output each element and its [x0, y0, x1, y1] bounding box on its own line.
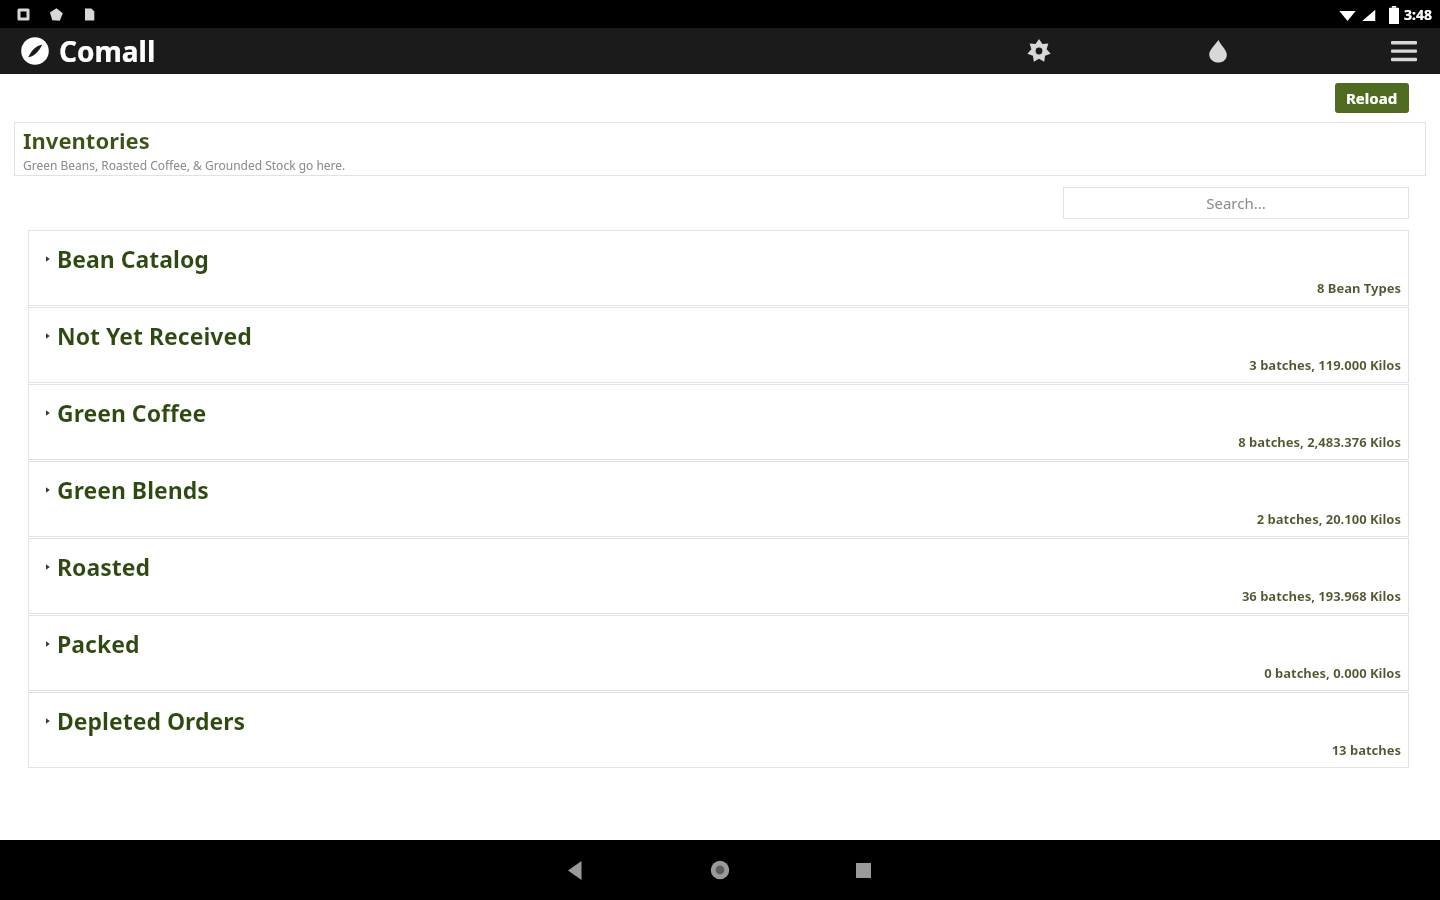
staticText: 2 batches, 20.100 Kilos: [1256, 510, 1401, 528]
staticText: Roasted: [57, 551, 151, 582]
button[interactable]: Depleted Orders: [28, 692, 1409, 768]
button[interactable]: Search...: [1063, 187, 1409, 219]
button[interactable]: Back: [551, 846, 599, 894]
staticText: 36 batches, 193.968 Kilos: [1241, 587, 1401, 605]
button[interactable]: Home: [696, 846, 744, 894]
staticText: 3 batches, 119.000 Kilos: [1249, 356, 1401, 374]
staticText: 13 batches: [1331, 741, 1401, 759]
button[interactable]: Roasting: [1193, 28, 1243, 74]
staticText: Reload: [1346, 88, 1398, 108]
button[interactable]: Recent apps: [839, 846, 887, 894]
staticText: Packed: [57, 628, 140, 659]
button[interactable]: Green Blends: [28, 461, 1409, 537]
staticText: Bean Catalog: [57, 243, 209, 274]
staticText: 3:48: [1404, 5, 1432, 24]
button[interactable]: Settings: [1014, 28, 1064, 74]
staticText: 8 Bean Types: [1316, 279, 1401, 297]
staticText: Green Beans, Roasted Coffee, & Grounded …: [23, 157, 346, 173]
button[interactable]: Comall: [20, 32, 156, 70]
staticText: Green Coffee: [57, 397, 207, 428]
staticText: Depleted Orders: [57, 705, 246, 736]
staticText: Green Blends: [57, 474, 209, 505]
staticText: Comall: [59, 32, 156, 70]
button[interactable]: Menu: [1380, 28, 1428, 74]
staticText: Inventories: [23, 125, 150, 155]
button[interactable]: Green Coffee: [28, 384, 1409, 460]
button[interactable]: Roasted: [28, 538, 1409, 614]
staticText: 8 batches, 2,483.376 Kilos: [1238, 433, 1401, 451]
staticText: 0 batches, 0.000 Kilos: [1264, 664, 1401, 682]
staticText: Not Yet Received: [57, 320, 252, 351]
staticText: Search...: [1206, 193, 1266, 213]
button[interactable]: Packed: [28, 615, 1409, 691]
button[interactable]: Bean Catalog: [28, 230, 1409, 306]
button[interactable]: Not Yet Received: [28, 307, 1409, 383]
button[interactable]: Reload: [1335, 83, 1409, 113]
